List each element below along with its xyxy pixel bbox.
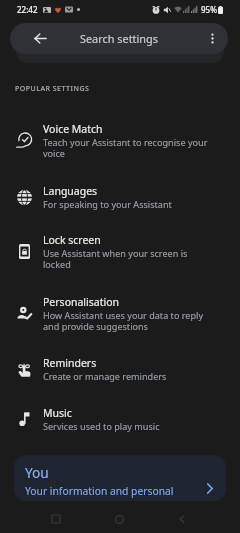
staticText: How Assistant uses your data to reply an…	[43, 309, 212, 332]
button[interactable]: Languages	[0, 177, 240, 217]
button[interactable]: You	[14, 455, 226, 501]
staticText: You	[25, 463, 49, 482]
button[interactable]: Recents	[42, 505, 70, 533]
button[interactable]: Lock screen	[0, 226, 240, 277]
button[interactable]: Back	[10, 23, 228, 54]
button[interactable]: Personalisation	[0, 288, 240, 339]
button[interactable]: Music	[0, 399, 240, 439]
staticText: Search settings	[80, 31, 158, 46]
staticText: 22:42	[17, 4, 38, 15]
button[interactable]: Reminders	[0, 349, 240, 389]
staticText: POPULAR SETTINGS	[15, 84, 90, 94]
staticText: Voice Match	[43, 122, 103, 136]
staticText: Music	[43, 406, 72, 420]
staticText: 95%	[201, 4, 217, 15]
staticText: Your information and personal	[25, 484, 174, 498]
staticText: Reminders	[43, 356, 97, 370]
staticText: Personalisation	[43, 295, 120, 309]
button[interactable]: Back	[25, 23, 56, 54]
staticText: Languages	[43, 184, 98, 198]
staticText: Services used to play music	[43, 420, 160, 432]
staticText: Create or manage reminders	[43, 370, 167, 382]
button[interactable]: Back	[168, 505, 196, 533]
button[interactable]: Home	[105, 505, 133, 533]
staticText: Use Assistant when your screen is locked	[43, 247, 212, 270]
staticText: Teach your Assistant to recognise your v…	[43, 136, 212, 159]
staticText: Lock screen	[43, 233, 101, 247]
staticText: For speaking to your Assistant	[43, 198, 172, 210]
button[interactable]: Voice Match	[0, 115, 240, 166]
button[interactable]: More options	[197, 23, 228, 54]
